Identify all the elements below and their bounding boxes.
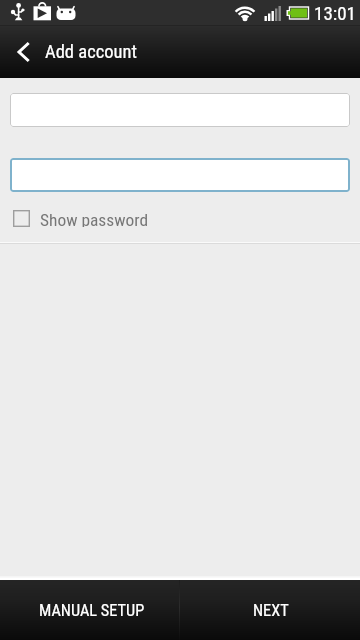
staticText: 13:01 — [314, 2, 356, 24]
button[interactable]: Show password — [0, 210, 360, 227]
staticText: NEXT — [253, 601, 289, 620]
button[interactable]: Back — [0, 26, 45, 78]
staticText: Add account — [45, 41, 137, 63]
button[interactable] — [10, 158, 350, 192]
button[interactable]: NEXT — [180, 580, 360, 640]
staticText: Show password — [40, 210, 149, 227]
button[interactable]: MANUAL SETUP — [0, 580, 179, 640]
button[interactable] — [10, 93, 350, 127]
staticText: MANUAL SETUP — [39, 601, 145, 620]
